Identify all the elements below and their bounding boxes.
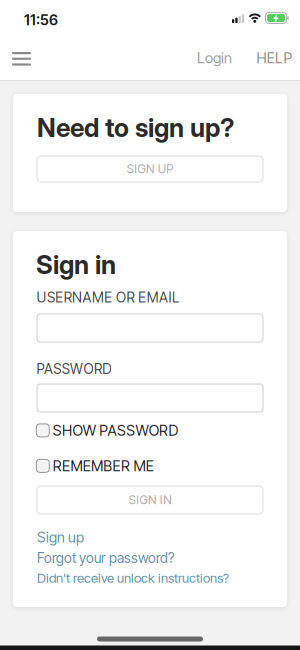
button[interactable]: HELP xyxy=(251,43,297,73)
staticText: Sign up xyxy=(37,529,84,546)
staticText: SHOW PASSWORD xyxy=(53,421,178,439)
staticText: Forgot your password? xyxy=(37,549,174,566)
staticText: SIGN IN xyxy=(129,493,171,507)
button[interactable]: Login xyxy=(192,43,237,73)
button[interactable]: REMEMBER ME xyxy=(36,457,154,475)
button[interactable]: Menu xyxy=(6,44,37,74)
staticText: Didn't receive unlock instructions? xyxy=(37,570,229,586)
button[interactable]: SHOW PASSWORD xyxy=(36,421,178,439)
staticText: Login xyxy=(197,49,232,67)
staticText: Need to sign up? xyxy=(37,112,235,143)
staticText: PASSWORD xyxy=(36,360,111,377)
button[interactable]: Sign up xyxy=(37,529,84,546)
staticText: REMEMBER ME xyxy=(53,457,154,475)
button[interactable]: SIGN IN xyxy=(37,486,263,514)
staticText: HELP xyxy=(256,49,292,67)
staticText: SIGN UP xyxy=(127,162,173,176)
button[interactable]: Didn't receive unlock instructions? xyxy=(37,570,229,586)
staticText: 11:56 xyxy=(24,11,58,29)
button[interactable]: SIGN UP xyxy=(37,156,263,182)
button[interactable]: Forgot your password? xyxy=(37,549,174,566)
staticText: Sign in xyxy=(36,249,116,280)
staticText: USERNAME OR EMAIL xyxy=(36,289,179,306)
